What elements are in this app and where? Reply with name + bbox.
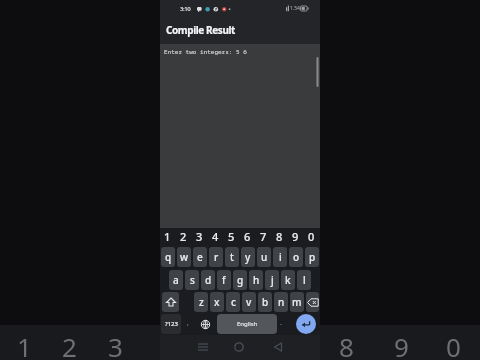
staticText: 7 [260, 229, 267, 244]
staticText: b [262, 295, 269, 309]
button[interactable]: 4 [207, 228, 223, 245]
button[interactable]: u [257, 247, 271, 267]
staticText: y [245, 250, 251, 264]
button[interactable]: 7 [255, 228, 271, 245]
button[interactable]: 0 [303, 228, 319, 245]
staticText: m [292, 295, 302, 309]
staticText: 9 [394, 329, 409, 360]
staticText: English [237, 320, 258, 328]
staticText: e [197, 250, 203, 264]
staticText: c [231, 295, 236, 309]
button[interactable]: 9 [287, 228, 303, 245]
staticText: 8 [276, 229, 283, 244]
button[interactable]: Compile Result [160, 14, 320, 44]
button[interactable]: m [290, 292, 304, 312]
staticText: ?123 [165, 320, 178, 328]
staticText: 5 [228, 229, 235, 244]
staticText: v [246, 295, 252, 309]
staticText: 3 [108, 329, 123, 360]
staticText: d [205, 273, 212, 287]
staticText: n [278, 295, 285, 309]
staticText: w [180, 250, 189, 264]
button[interactable]: j [265, 270, 279, 290]
button[interactable]: x [210, 292, 224, 312]
button[interactable]: 6 [239, 228, 255, 245]
staticText: x [214, 295, 220, 309]
button[interactable] [273, 342, 283, 352]
staticText: f [222, 273, 226, 287]
button[interactable]: p [305, 247, 319, 267]
button[interactable]: a [169, 270, 183, 290]
staticText: 3 [196, 229, 203, 244]
button[interactable]: k [281, 270, 295, 290]
button[interactable] [162, 292, 179, 312]
button[interactable]: d [201, 270, 215, 290]
button[interactable]: Enter two integers: 5 6 [160, 44, 320, 228]
staticText: 1 [164, 229, 171, 244]
button[interactable]: h [249, 270, 263, 290]
button[interactable]: 1 [159, 228, 175, 245]
staticText: k [285, 273, 291, 287]
staticText: j [271, 273, 274, 287]
staticText: t [230, 250, 234, 264]
button[interactable]: l [297, 270, 311, 290]
button[interactable] [196, 314, 215, 334]
staticText: 2 [62, 329, 77, 360]
staticText: h [253, 273, 260, 287]
button[interactable]: f [217, 270, 231, 290]
staticText: 1 [17, 329, 32, 360]
staticText: 4 [212, 229, 219, 244]
staticText: 6 [244, 229, 251, 244]
staticText: z [199, 295, 204, 309]
button[interactable]: z [194, 292, 208, 312]
staticText: 9 [292, 229, 299, 244]
button[interactable]: g [233, 270, 247, 290]
button[interactable] [306, 292, 319, 312]
button[interactable]: v [242, 292, 256, 312]
staticText: 0 [308, 229, 315, 244]
button[interactable]: s [185, 270, 199, 290]
staticText: . [280, 318, 282, 328]
button[interactable]: b [258, 292, 272, 312]
button[interactable]: r [209, 247, 223, 267]
button[interactable] [234, 342, 244, 352]
button[interactable]: n [274, 292, 288, 312]
button[interactable]: t [225, 247, 239, 267]
staticText: Enter two integers: 5 6 [164, 48, 247, 56]
button[interactable]: w [177, 247, 191, 267]
button[interactable]: 2 [175, 228, 191, 245]
button[interactable]: English [217, 314, 277, 334]
staticText: 0 [446, 329, 461, 360]
button[interactable]: c [226, 292, 240, 312]
staticText: 3:10 [180, 5, 191, 13]
button[interactable]: 8 [271, 228, 287, 245]
button[interactable]: i [273, 247, 287, 267]
staticText: 1.54 [290, 5, 300, 12]
button[interactable] [197, 342, 209, 352]
button[interactable]: q [161, 247, 175, 267]
staticText: 8 [339, 329, 354, 360]
staticText: g [237, 273, 244, 287]
button[interactable]: 5 [223, 228, 239, 245]
button[interactable] [296, 314, 316, 334]
staticText: , [187, 318, 189, 328]
staticText: l [303, 273, 306, 287]
button[interactable]: e [193, 247, 207, 267]
staticText: q [165, 250, 172, 264]
staticText: a [173, 273, 179, 287]
button[interactable]: o [289, 247, 303, 267]
staticText: o [293, 250, 300, 264]
staticText: i [279, 250, 282, 264]
staticText: r [214, 250, 219, 264]
button[interactable]: y [241, 247, 255, 267]
staticText: p [309, 250, 316, 264]
button[interactable]: ?123 [161, 314, 181, 334]
staticText: s [190, 273, 195, 287]
staticText: u [261, 250, 268, 264]
staticText: 2 [180, 229, 187, 244]
button[interactable]: 3 [191, 228, 207, 245]
staticText: Compile Result [166, 23, 236, 37]
